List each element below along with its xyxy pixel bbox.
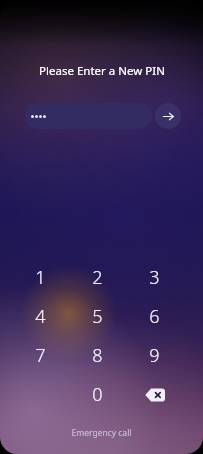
button[interactable]: Delete [126,375,183,414]
button[interactable]: Emergency call [71,427,132,439]
staticText: 9 [149,343,160,368]
button[interactable]: 1 [12,258,69,297]
button[interactable]: 7 [12,336,69,375]
staticText: 5 [92,304,103,329]
staticText: 7 [35,343,46,368]
button[interactable]: 2 [69,258,126,297]
staticText: 2 [92,265,103,290]
staticText: 3 [149,265,160,290]
staticText: Emergency call [71,427,132,439]
staticText: 4 [35,304,46,329]
staticText: 0 [92,382,103,407]
staticText: 6 [149,304,160,329]
button[interactable]: Submit PIN [155,103,181,129]
button[interactable]: 8 [69,336,126,375]
staticText: 1 [35,265,46,290]
button[interactable]: 3 [126,258,183,297]
staticText: Please Enter a New PIN [39,63,165,79]
button[interactable] [25,103,152,129]
button[interactable]: 6 [126,297,183,336]
button[interactable]: 9 [126,336,183,375]
button[interactable]: 5 [69,297,126,336]
button[interactable]: 4 [12,297,69,336]
button[interactable]: 0 [69,375,126,414]
staticText: 8 [92,343,103,368]
